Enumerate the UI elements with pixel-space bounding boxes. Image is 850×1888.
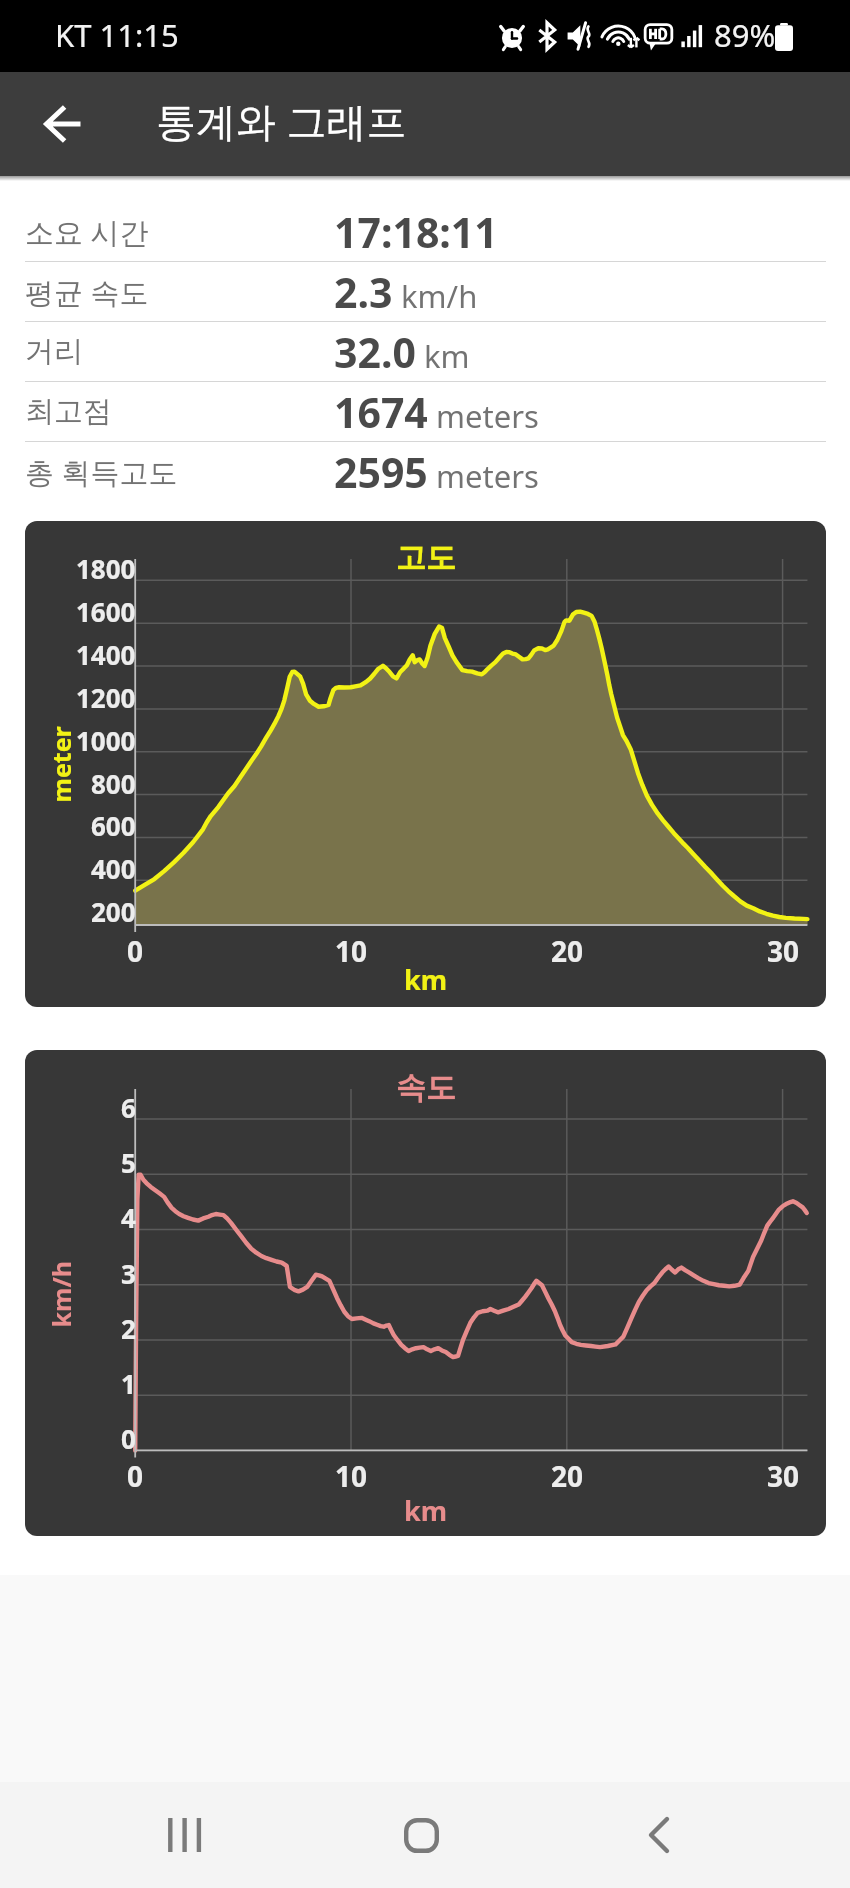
staticText: 1 — [121, 1366, 136, 1398]
staticText: KT 11:15 — [55, 14, 179, 56]
staticText: 1674 — [334, 384, 428, 440]
staticText: 1000 — [76, 723, 136, 755]
staticText: 거리 — [25, 333, 83, 370]
staticText: km — [404, 961, 448, 998]
staticText: 20 — [551, 1457, 584, 1495]
staticText: 4 — [121, 1200, 136, 1232]
staticText: 속도 — [396, 1069, 456, 1107]
staticText: 통계와 그래프 — [156, 93, 407, 148]
staticText: 6 — [121, 1090, 136, 1122]
staticText: 평균 속도 — [25, 272, 149, 312]
staticText: 소요 시간 — [25, 212, 149, 252]
staticText: 0 — [127, 932, 144, 970]
button[interactable]: Back — [11, 72, 115, 176]
staticText: meter — [43, 725, 77, 802]
staticText: 20 — [551, 932, 584, 970]
staticText: 30 — [767, 932, 800, 970]
staticText: 총 획득고도 — [25, 452, 178, 492]
staticText: 2.3 — [334, 264, 393, 320]
staticText: 1400 — [76, 637, 136, 669]
staticText: meters — [428, 395, 539, 437]
staticText: 600 — [91, 808, 136, 840]
staticText: 200 — [91, 894, 136, 926]
button[interactable]: Back — [599, 1782, 719, 1888]
staticText: 89% — [714, 14, 776, 56]
staticText: 32.0 — [334, 324, 416, 380]
staticText: 1200 — [76, 680, 136, 712]
staticText: 10 — [335, 1457, 368, 1495]
staticText: 30 — [767, 1457, 800, 1495]
staticText: meters — [428, 455, 539, 497]
staticText: km — [404, 1492, 448, 1529]
button[interactable]: Home — [361, 1782, 481, 1888]
staticText: 2595 — [334, 444, 428, 500]
staticText: 17:18:11 — [334, 204, 498, 260]
staticText: 1800 — [76, 551, 136, 583]
staticText: 0 — [127, 1457, 144, 1495]
staticText: 10 — [335, 932, 368, 970]
staticText: 최고점 — [25, 393, 112, 430]
staticText: 3 — [121, 1256, 136, 1288]
staticText: 0 — [121, 1421, 136, 1453]
staticText: 800 — [91, 766, 136, 798]
staticText: 5 — [121, 1145, 136, 1177]
staticText: km — [416, 335, 470, 377]
staticText: 2 — [121, 1311, 136, 1343]
staticText: km/h — [43, 1260, 77, 1327]
staticText: 고도 — [396, 539, 456, 577]
button[interactable]: Recent apps — [124, 1782, 244, 1888]
staticText: 1600 — [76, 594, 136, 626]
staticText: km/h — [393, 275, 478, 317]
staticText: 400 — [91, 851, 136, 883]
